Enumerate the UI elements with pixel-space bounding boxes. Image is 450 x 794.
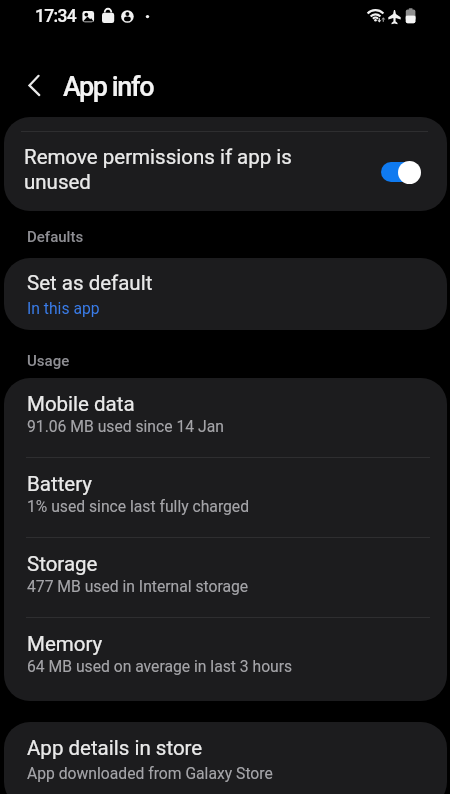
staticText: 477 MB used in Internal storage	[27, 577, 249, 595]
staticText: 1% used since last fully charged	[27, 497, 250, 515]
staticText: Remove permissions if app is unused	[24, 145, 292, 194]
staticText: Mobile data	[27, 392, 135, 416]
staticText: Set as default	[27, 271, 153, 295]
staticText: App info	[63, 71, 154, 103]
button[interactable]	[0, 0, 60, 117]
button[interactable]: Memory	[4, 618, 447, 698]
staticText: Memory	[27, 632, 103, 656]
button[interactable]: Battery	[4, 458, 447, 538]
button[interactable]: App details in store	[4, 722, 447, 794]
staticText: Usage	[27, 352, 70, 370]
staticText: 91.06 MB used since 14 Jan	[27, 417, 224, 435]
button[interactable]	[381, 162, 420, 182]
button[interactable]: Storage	[4, 538, 447, 618]
button[interactable]: Set as default	[4, 258, 447, 330]
staticText: App downloaded from Galaxy Store	[27, 764, 273, 782]
button[interactable]: Remove permissions if app is unused	[4, 117, 447, 211]
staticText: In this app	[27, 299, 100, 317]
staticText: Battery	[27, 472, 93, 496]
button[interactable]: Mobile data	[4, 378, 447, 458]
staticText: 64 MB used on average in last 3 hours	[27, 657, 293, 675]
staticText: 17:34	[35, 6, 76, 27]
staticText: App details in store	[27, 736, 203, 760]
staticText: Defaults	[27, 228, 84, 246]
staticText: Storage	[27, 552, 98, 576]
